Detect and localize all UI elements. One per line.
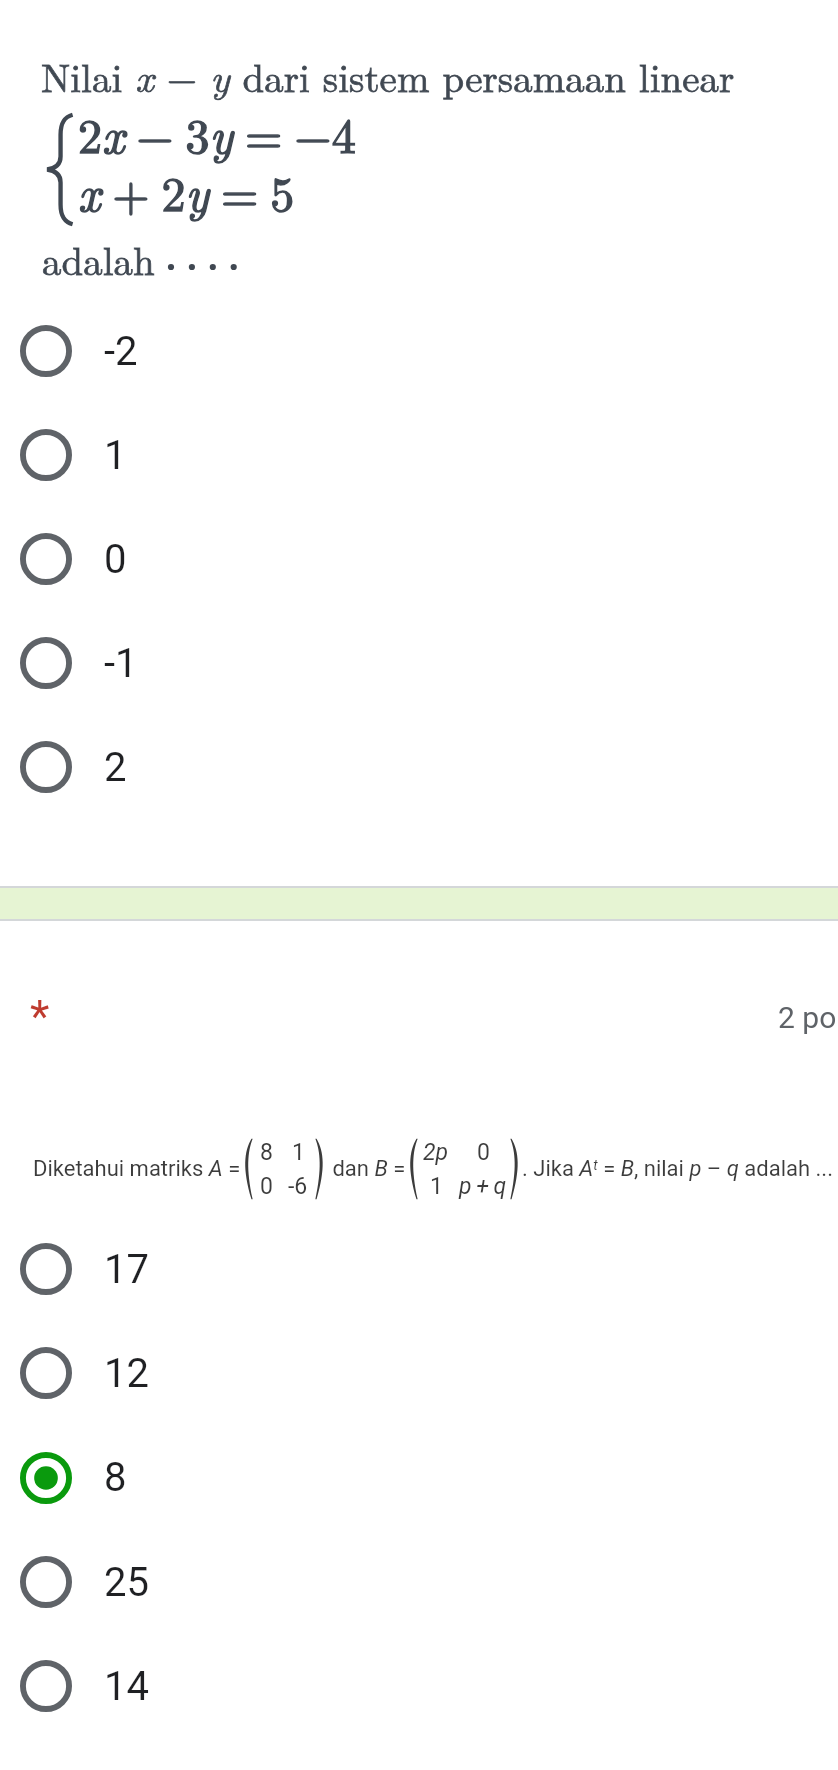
button[interactable]: 8 xyxy=(0,1425,838,1530)
staticText: 1 xyxy=(430,1173,443,1200)
button[interactable]: 14 xyxy=(0,1634,838,1738)
staticText: 12 xyxy=(104,1350,149,1397)
staticText: adalah xyxy=(42,231,155,286)
button[interactable]: 12 xyxy=(0,1321,838,1425)
staticText: 2 poin xyxy=(778,1000,838,1035)
button[interactable]: 0 xyxy=(0,507,838,611)
staticText: -2 xyxy=(104,328,138,375)
staticText: . Jika At = B, nilai p – q adalah ... xyxy=(522,1156,833,1182)
staticText: x + 2y = 5 xyxy=(78,157,295,225)
staticText: x + 2y = 5 xyxy=(78,157,295,225)
button[interactable]: 17 xyxy=(0,1217,838,1321)
staticText: Diketahui matriks A = xyxy=(33,1156,241,1182)
staticText: 1 xyxy=(104,432,127,479)
button[interactable]: 1 xyxy=(0,403,838,507)
staticText: 8 xyxy=(104,1454,127,1501)
staticText: * xyxy=(30,990,50,1043)
staticText: 1 xyxy=(292,1139,305,1166)
staticText: 14 xyxy=(104,1663,149,1710)
button[interactable]: -2 xyxy=(0,299,838,403)
button[interactable]: -1 xyxy=(0,611,838,715)
staticText: p + q xyxy=(459,1173,507,1200)
staticText: 0 xyxy=(260,1173,273,1200)
staticText: -6 xyxy=(288,1173,308,1200)
staticText: 17 xyxy=(104,1246,149,1293)
staticText: 2p xyxy=(423,1139,449,1166)
staticText: 25 xyxy=(104,1559,149,1606)
staticText: adalah xyxy=(42,231,155,286)
staticText: 0 xyxy=(104,536,127,583)
button[interactable]: 25 xyxy=(0,1530,838,1634)
staticText: -1 xyxy=(104,640,138,687)
staticText: 2 xyxy=(104,744,127,791)
staticText: 2x − 3y = −4 xyxy=(78,99,356,167)
staticText: Nilai x − y dari sistem persamaan linear xyxy=(41,47,735,104)
staticText: dan B = xyxy=(327,1156,406,1182)
staticText: 0 xyxy=(477,1139,490,1166)
button[interactable]: 2 xyxy=(0,715,838,819)
staticText: 8 xyxy=(260,1139,273,1166)
staticText: Nilai x − y dari sistem persamaan linear xyxy=(41,47,735,104)
staticText: 2x − 3y = −4 xyxy=(78,99,356,167)
